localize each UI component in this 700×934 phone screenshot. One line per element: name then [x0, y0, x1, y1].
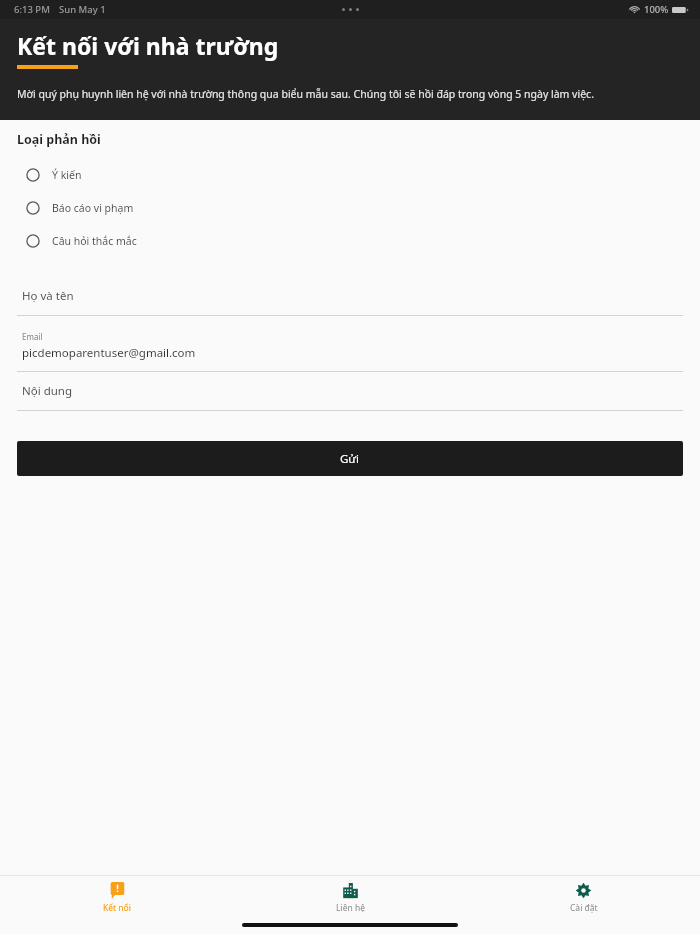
staticText: Email — [22, 331, 43, 342]
staticText: Ý kiến — [52, 168, 82, 182]
button[interactable]: Liên hệ — [234, 876, 467, 920]
button[interactable]: Ý kiến — [0, 158, 700, 191]
staticText: Gửi — [340, 451, 360, 467]
button[interactable]: Báo cáo vi phạm — [0, 191, 700, 224]
staticText: Nội dung — [22, 383, 73, 399]
button[interactable]: Họ và tên — [0, 277, 700, 316]
staticText: 6:13 PM — [14, 3, 50, 16]
button[interactable]: Gửi — [17, 441, 683, 476]
button[interactable]: Câu hỏi thắc mắc — [0, 224, 700, 257]
staticText: Loại phản hồi — [17, 131, 101, 148]
staticText: picdemoparentuser@gmail.com — [22, 345, 196, 361]
button[interactable]: Email — [0, 316, 700, 372]
staticText: Cài đặt — [570, 902, 598, 914]
staticText: Kết nối — [103, 902, 131, 914]
button[interactable]: Nội dung — [0, 372, 700, 411]
staticText: Kết nối với nhà trường — [17, 30, 279, 61]
staticText: Câu hỏi thắc mắc — [52, 234, 137, 248]
staticText: Mời quý phụ huynh liên hệ với nhà trường… — [17, 87, 594, 101]
staticText: Báo cáo vi phạm — [52, 201, 134, 215]
button[interactable]: Cài đặt — [467, 876, 700, 920]
staticText: Liên hệ — [336, 902, 365, 914]
staticText: 100% — [644, 3, 669, 16]
button[interactable]: Kết nối — [0, 876, 234, 920]
staticText: Sun May 1 — [59, 3, 106, 16]
staticText: Họ và tên — [22, 288, 74, 304]
